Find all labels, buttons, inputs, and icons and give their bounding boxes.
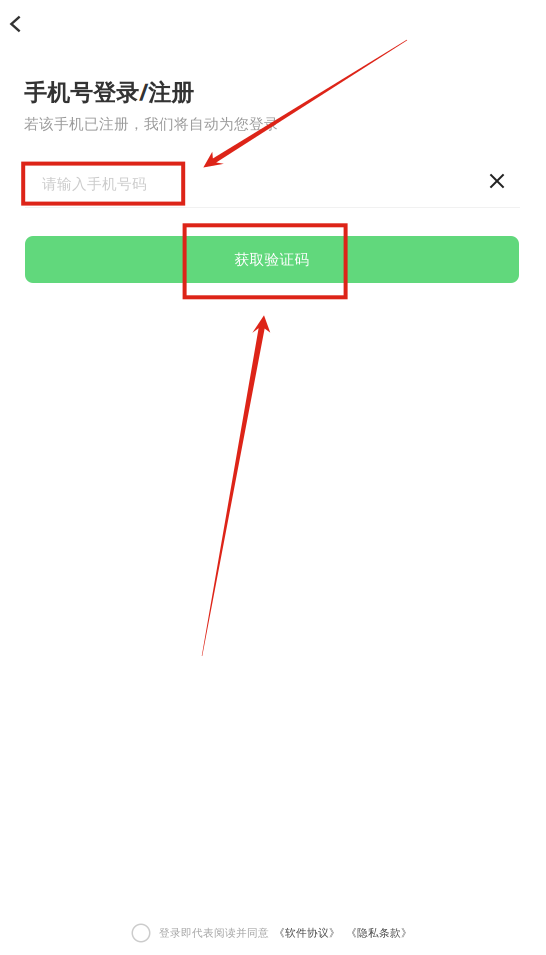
button[interactable]: Clear: [475, 159, 519, 203]
button[interactable]: 登录即代表阅读并同意: [159, 918, 412, 948]
button[interactable]: 请输入手机号码: [24, 159, 462, 209]
staticText: 若该手机已注册，我们将自动为您登录: [24, 115, 279, 133]
button[interactable]: Back: [0, 1, 38, 47]
staticText: 手机号登录/注册: [24, 77, 194, 107]
staticText: 《隐私条款》: [346, 926, 412, 939]
staticText: 获取验证码: [234, 250, 309, 268]
staticText: 《软件协议》: [274, 926, 340, 939]
button[interactable]: Agree to terms: [126, 918, 156, 948]
staticText: 登录即代表阅读并同意: [159, 926, 269, 939]
button[interactable]: 获取验证码: [25, 236, 519, 283]
staticText: 请输入手机号码: [42, 175, 147, 193]
